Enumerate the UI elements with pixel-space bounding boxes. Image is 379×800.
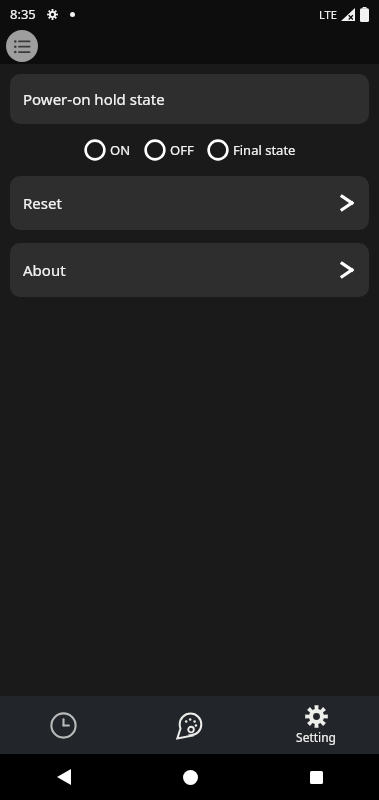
button[interactable]: Power-on hold state xyxy=(10,74,369,124)
button[interactable]: OFF xyxy=(144,137,194,163)
button[interactable]: Back xyxy=(0,754,127,800)
button[interactable]: About xyxy=(10,243,369,297)
button[interactable]: Recent apps xyxy=(253,754,379,800)
button[interactable]: Home xyxy=(127,754,253,800)
button[interactable]: Reset xyxy=(10,176,369,230)
staticText: Setting xyxy=(296,729,336,745)
staticText: OFF xyxy=(170,141,194,159)
button[interactable]: ON xyxy=(84,137,131,163)
staticText: Power-on hold state xyxy=(23,89,165,109)
staticText: ON xyxy=(110,141,131,159)
button[interactable]: Setting xyxy=(253,696,379,754)
staticText: Reset xyxy=(23,193,62,213)
staticText: LTE xyxy=(319,7,337,22)
button[interactable]: Theme xyxy=(127,696,253,754)
staticText: Final state xyxy=(233,141,296,159)
button[interactable]: Clock xyxy=(0,696,127,754)
button[interactable]: Final state xyxy=(207,137,296,163)
staticText: About xyxy=(23,260,66,280)
staticText: 8:35 xyxy=(10,5,36,23)
button[interactable]: Menu xyxy=(6,30,38,62)
